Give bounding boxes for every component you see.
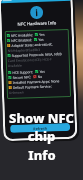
staticText: Show NFC chip xyxy=(0,109,83,145)
staticText: Yes xyxy=(38,37,44,41)
staticText: Installed Payment Apps: None xyxy=(12,78,59,84)
staticText: Adapter State: android.nfc. xyxy=(11,41,53,47)
staticText: NFC Enabled: xyxy=(11,37,32,42)
staticText: Yes xyxy=(39,32,45,36)
staticText: Available xyxy=(8,63,22,67)
staticText: Default Payment Service: xyxy=(13,83,52,89)
button[interactable]: NFC Available: xyxy=(7,31,69,97)
staticText: Refresh xyxy=(33,126,47,131)
staticText: No xyxy=(37,74,42,78)
staticText: Yes xyxy=(39,69,45,73)
staticText: Unknown xyxy=(9,89,24,94)
staticText: Supported Protocols: NfcA, NfcB xyxy=(11,51,62,57)
staticText: Info xyxy=(28,146,56,164)
staticText: HCE Support: xyxy=(12,69,33,74)
button[interactable]: Refresh xyxy=(10,123,70,133)
staticText: Card Emulation (HCE): HCE-F xyxy=(8,56,52,62)
staticText: Secure NFC: xyxy=(12,74,31,79)
staticText: NFC Available: xyxy=(11,32,33,37)
staticText: NFC Hardware Info xyxy=(17,20,57,28)
staticText: NfcAdapter@5ad8b3 xyxy=(7,47,40,52)
button[interactable]: NFC info xyxy=(30,6,43,19)
